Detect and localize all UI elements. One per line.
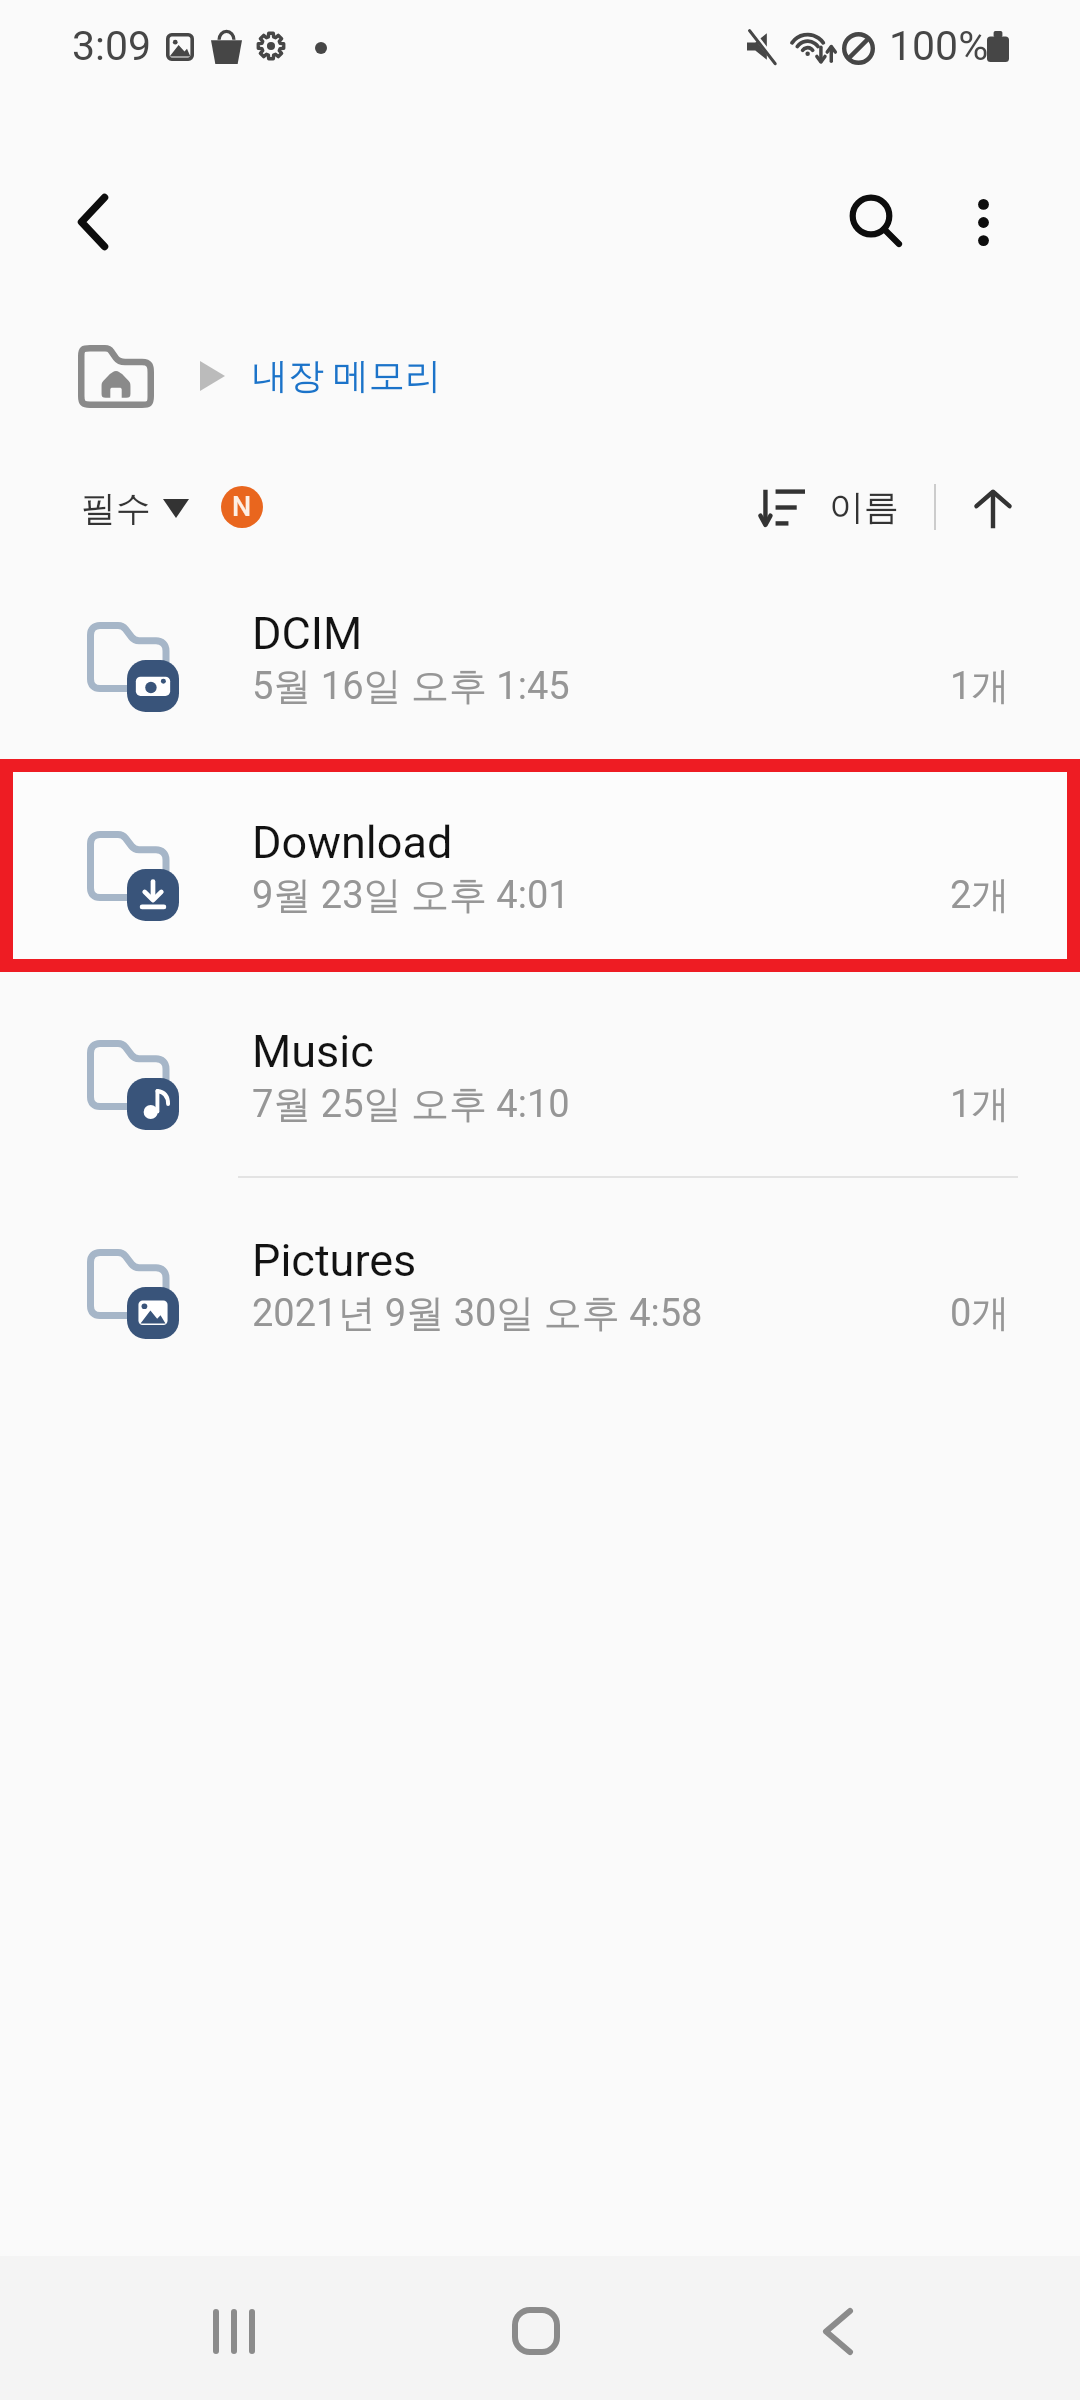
staticText: 2021년 9월 30일 오후 4:58	[252, 1289, 703, 1337]
button[interactable]: Download	[0, 759, 1080, 968]
button[interactable]: Music	[0, 968, 1080, 1177]
staticText: Music	[252, 1025, 374, 1078]
button[interactable]: 내장 메모리	[252, 353, 441, 398]
button[interactable]: Recent apps	[174, 2258, 294, 2400]
button[interactable]: More options	[927, 166, 1039, 278]
staticText: 내장 메모리	[252, 353, 441, 398]
button[interactable]: Back	[37, 166, 149, 278]
button[interactable]: Internal storage root	[60, 330, 172, 422]
staticText: 2개	[950, 871, 1010, 919]
staticText: 1개	[950, 662, 1010, 710]
button[interactable]: Home	[476, 2258, 596, 2400]
staticText: DCIM	[252, 607, 363, 660]
staticText: N	[232, 491, 252, 523]
staticText: 7월 25일 오후 4:10	[252, 1080, 570, 1128]
button[interactable]: Back	[778, 2258, 898, 2400]
button[interactable]: DCIM	[0, 550, 1080, 759]
button[interactable]: Sort ascending	[949, 466, 1037, 554]
staticText: 0개	[950, 1289, 1010, 1337]
staticText: 9월 23일 오후 4:01	[252, 871, 570, 919]
button[interactable]: 필수	[81, 475, 189, 541]
staticText: 필수	[81, 486, 151, 530]
staticText: Download	[252, 816, 453, 869]
staticText: 이름	[829, 485, 899, 529]
staticText: 1개	[950, 1080, 1010, 1128]
button[interactable]: Pictures	[0, 1177, 1080, 1386]
staticText: Pictures	[252, 1234, 417, 1287]
staticText: 3:09	[72, 22, 152, 70]
staticText: 100%	[889, 22, 989, 70]
button[interactable]: 이름	[759, 474, 899, 540]
staticText: 5월 16일 오후 1:45	[252, 662, 570, 710]
button[interactable]: Search	[820, 165, 932, 277]
